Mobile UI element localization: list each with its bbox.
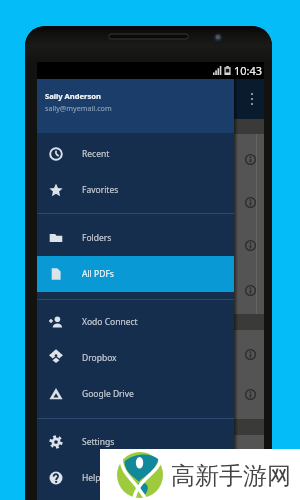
button[interactable]: Sally Anderson xyxy=(37,79,234,133)
button[interactable]: Favorites xyxy=(37,172,234,208)
button[interactable]: Folders xyxy=(37,220,234,256)
button[interactable]: Help xyxy=(37,460,234,496)
button[interactable]: Info xyxy=(245,349,256,360)
button[interactable]: Info xyxy=(245,389,256,400)
button[interactable]: Info xyxy=(245,154,256,165)
staticText: Sally Anderson xyxy=(45,91,101,101)
staticText: 高新手游网 xyxy=(171,461,291,491)
staticText: Help xyxy=(82,472,101,484)
staticText: Dropbox xyxy=(82,352,117,364)
button[interactable]: Google Drive xyxy=(37,376,234,412)
staticText: All PDFs xyxy=(82,268,114,280)
staticText: Recent xyxy=(82,148,110,160)
staticText: sally@myemail.com xyxy=(45,103,112,113)
button[interactable]: Info xyxy=(245,285,256,296)
button[interactable]: Info xyxy=(245,240,256,251)
button[interactable]: Dropbox xyxy=(37,340,234,376)
staticText: 10:43 xyxy=(234,63,263,78)
staticText: Xodo Connect xyxy=(82,316,138,328)
button[interactable]: Xodo Connect xyxy=(37,304,234,340)
button[interactable]: Recent xyxy=(37,136,234,172)
staticText: Folders xyxy=(82,232,112,244)
button[interactable]: All PDFs xyxy=(37,256,234,292)
staticText: Google Drive xyxy=(82,388,134,400)
button[interactable]: Info xyxy=(245,197,256,208)
staticText: Settings xyxy=(82,436,115,448)
button[interactable]: Settings xyxy=(37,424,234,460)
staticText: Favorites xyxy=(82,184,119,196)
